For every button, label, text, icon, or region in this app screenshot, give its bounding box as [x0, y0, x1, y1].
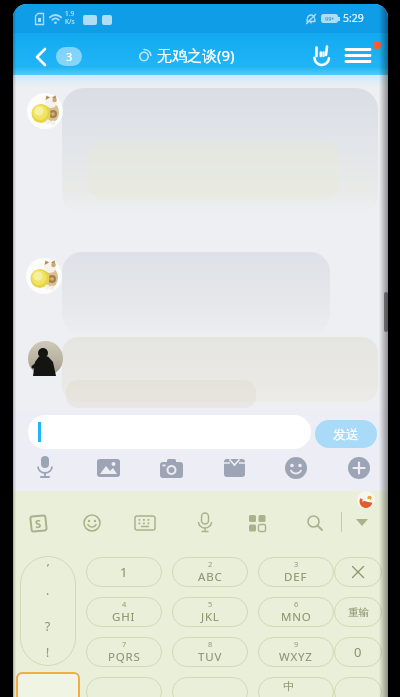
staticText: GHI — [112, 609, 136, 625]
button[interactable]: 3 — [21, 44, 87, 70]
staticText: 9 — [294, 639, 299, 649]
button[interactable]: 0 — [334, 637, 382, 667]
button[interactable] — [134, 513, 156, 533]
staticText: 6 — [294, 599, 299, 609]
button[interactable]: 7 — [86, 637, 162, 667]
button[interactable]: 3 — [258, 557, 334, 587]
staticText: JKL — [201, 609, 220, 625]
staticText: 无鸡之谈(9) — [157, 45, 235, 65]
button[interactable] — [282, 454, 310, 482]
button[interactable]: S — [27, 512, 49, 534]
button[interactable] — [305, 513, 325, 533]
button[interactable]: 中 — [258, 677, 334, 697]
staticText: · — [46, 586, 50, 602]
staticText: 1 — [120, 563, 128, 581]
staticText: 99+ — [325, 15, 335, 22]
staticText: 7 — [122, 639, 127, 649]
staticText: S — [34, 516, 43, 531]
button[interactable]: 1 — [86, 557, 162, 587]
button[interactable] — [306, 41, 336, 69]
button[interactable] — [81, 512, 103, 534]
button[interactable]: ’ — [20, 556, 76, 666]
button[interactable] — [28, 415, 311, 449]
staticText: 发送 — [333, 426, 359, 442]
staticText: 3 — [66, 49, 73, 64]
button[interactable] — [220, 454, 248, 482]
button[interactable]: 8 — [172, 637, 248, 667]
staticText: TUV — [198, 649, 223, 665]
staticText: K/s — [65, 17, 75, 26]
staticText: WXYZ — [279, 649, 313, 665]
staticText: PQRS — [108, 649, 141, 665]
button[interactable] — [172, 677, 248, 697]
button[interactable]: 9 — [258, 637, 334, 667]
button[interactable] — [157, 454, 185, 482]
staticText: ABC — [198, 569, 223, 585]
button[interactable]: 2 — [172, 557, 248, 587]
button[interactable]: 发送 — [315, 420, 377, 448]
staticText: 4 — [122, 599, 127, 609]
button[interactable] — [334, 677, 382, 697]
button[interactable] — [353, 515, 373, 531]
button[interactable]: 4 — [86, 597, 162, 627]
staticText: ! — [46, 644, 50, 660]
staticText: ? — [45, 618, 51, 634]
staticText: MNO — [281, 609, 312, 625]
staticText: 中 — [283, 679, 294, 693]
button[interactable]: 重输 — [334, 597, 382, 627]
staticText: 3 — [294, 559, 299, 569]
button[interactable] — [195, 512, 215, 534]
button[interactable] — [345, 454, 373, 482]
staticText: 8 — [208, 639, 213, 649]
button[interactable] — [16, 672, 80, 697]
button[interactable] — [247, 513, 267, 533]
button[interactable] — [86, 677, 162, 697]
button[interactable] — [31, 454, 59, 482]
button[interactable]: 5 — [172, 597, 248, 627]
button[interactable] — [94, 454, 122, 482]
staticText: DEF — [284, 569, 308, 585]
button[interactable]: 6 — [258, 597, 334, 627]
button[interactable] — [334, 557, 382, 587]
staticText: 5 — [208, 599, 213, 609]
staticText: 1.9 — [65, 9, 75, 18]
button[interactable] — [343, 41, 377, 69]
staticText: 5:29 — [343, 11, 364, 25]
staticText: 2 — [208, 559, 213, 569]
staticText: 0 — [354, 643, 362, 661]
staticText: ’ — [47, 560, 49, 575]
staticText: 重输 — [348, 606, 369, 619]
